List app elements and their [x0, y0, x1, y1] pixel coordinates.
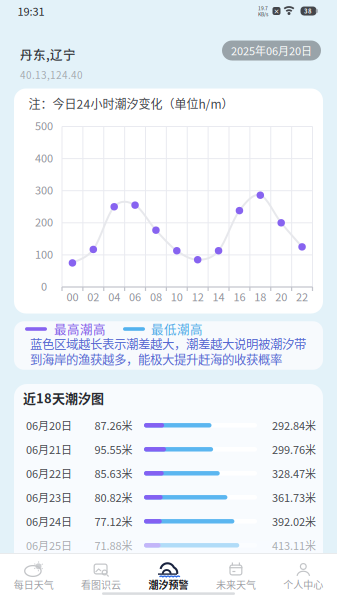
- staticText: 95.55米: [94, 441, 132, 457]
- button[interactable]: 个人中心: [270, 554, 337, 600]
- staticText: 蓝色区域越长表示潮差越大，潮差越大说明被潮汐带: [30, 334, 306, 352]
- button[interactable]: 潮汐预警: [135, 554, 202, 600]
- staticText: 00: [66, 288, 78, 304]
- staticText: 300: [35, 182, 53, 198]
- staticText: 20: [275, 288, 287, 304]
- staticText: 06月25日: [26, 537, 72, 553]
- staticText: 最低潮高: [151, 320, 203, 338]
- staticText: 02: [87, 288, 99, 304]
- staticText: 丹东,辽宁: [20, 45, 76, 63]
- staticText: 06月22日: [26, 465, 72, 481]
- staticText: 06月23日: [26, 489, 72, 505]
- staticText: 19.7: [258, 4, 268, 12]
- staticText: 292.84米: [272, 417, 316, 433]
- button[interactable]: 每日天气: [0, 554, 67, 600]
- staticText: 14: [213, 288, 225, 304]
- button[interactable]: 丹东,辽宁: [20, 45, 83, 82]
- staticText: 个人中心: [283, 577, 323, 592]
- staticText: 400: [35, 150, 53, 165]
- staticText: ×: [273, 7, 279, 15]
- staticText: 19:31: [17, 3, 44, 19]
- staticText: 18: [254, 288, 266, 304]
- staticText: 04: [108, 288, 120, 304]
- staticText: 38: [304, 7, 312, 15]
- staticText: 328.47米: [272, 465, 316, 481]
- staticText: 潮汐预警: [148, 577, 188, 592]
- staticText: 到海岸的渔获越多，能极大提升赶海的收获概率: [30, 350, 282, 368]
- staticText: 06月20日: [26, 417, 72, 433]
- staticText: 87.26米: [94, 417, 132, 433]
- staticText: 100: [35, 246, 53, 262]
- staticText: 近18天潮汐图: [23, 388, 104, 407]
- staticText: 每日天气: [14, 577, 54, 592]
- staticText: 77.12米: [94, 513, 132, 529]
- staticText: 71.88米: [94, 537, 132, 553]
- staticText: 2025年06月20日: [231, 42, 312, 58]
- button[interactable]: 2025年06月20日: [222, 40, 321, 60]
- staticText: 注：今日24小时潮汐变化（单位h/m）: [28, 95, 233, 112]
- staticText: 361.73米: [272, 489, 316, 505]
- staticText: 299.76米: [272, 441, 316, 457]
- staticText: 80.82米: [94, 489, 132, 505]
- staticText: KB/s: [258, 10, 268, 18]
- staticText: 10: [171, 288, 183, 304]
- staticText: 08: [150, 288, 162, 304]
- staticText: 未来天气: [216, 577, 256, 592]
- button[interactable]: 未来天气: [202, 554, 270, 600]
- staticText: 200: [35, 214, 53, 230]
- staticText: 看图识云: [81, 577, 121, 592]
- staticText: 最高潮高: [54, 320, 106, 338]
- staticText: 06月21日: [26, 441, 72, 457]
- staticText: 500: [35, 117, 53, 133]
- staticText: 12: [192, 288, 204, 304]
- staticText: 392.02米: [272, 513, 316, 529]
- staticText: 16: [233, 288, 245, 304]
- staticText: 06: [129, 288, 141, 304]
- staticText: 22: [296, 288, 308, 304]
- staticText: 413.11米: [272, 537, 316, 553]
- button[interactable]: 看图识云: [67, 554, 135, 600]
- staticText: 85.63米: [94, 465, 132, 481]
- staticText: 06月24日: [26, 513, 72, 529]
- staticText: 40.13,124.40: [20, 67, 83, 82]
- staticText: 0: [41, 278, 47, 294]
